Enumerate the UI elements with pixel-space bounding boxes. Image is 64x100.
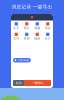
staticText: 文字 <box>13 26 19 30</box>
button[interactable]: 文字 <box>11 22 21 30</box>
staticText: 立即体验 <box>17 58 29 62</box>
staticText: 取消 <box>15 81 21 85</box>
staticText: 文件 <box>13 37 19 40</box>
staticText: 语音 <box>45 26 51 30</box>
button[interactable]: 图片 <box>21 22 32 30</box>
button[interactable]: 表情 <box>21 32 32 40</box>
staticText: 图片 <box>24 26 30 30</box>
button[interactable]: 链接 <box>32 32 42 40</box>
button[interactable]: 名片 <box>42 32 53 40</box>
staticText: 一键导出 <box>31 81 43 85</box>
staticText: 表情 <box>24 37 30 40</box>
staticText: 消息记录 一键导出 <box>11 4 52 10</box>
button[interactable]: 一键导出 <box>24 80 51 86</box>
button[interactable]: 文件 <box>11 32 21 40</box>
button[interactable]: 取消 <box>13 80 24 86</box>
staticText: 视频 <box>34 26 40 30</box>
staticText: 链接 <box>34 37 40 40</box>
staticText: 名片 <box>45 37 51 40</box>
button[interactable]: 立即体验 <box>13 58 31 62</box>
button[interactable]: 语音 <box>42 22 53 30</box>
button[interactable]: 视频 <box>32 22 42 30</box>
